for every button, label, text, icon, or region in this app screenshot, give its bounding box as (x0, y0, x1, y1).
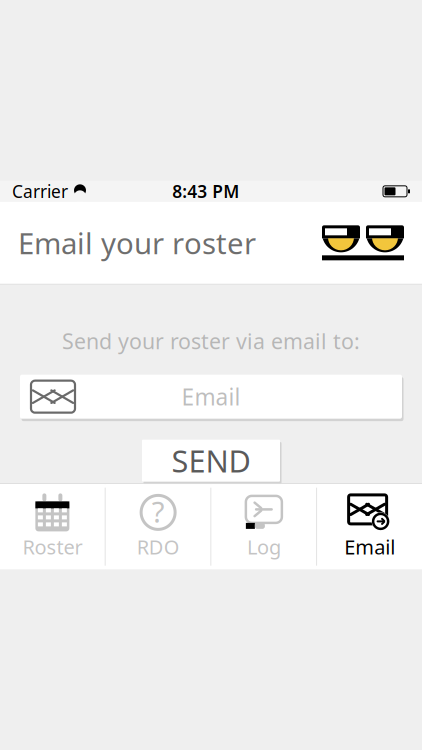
staticText: Send your roster via email to: (62, 327, 360, 355)
staticText: Roster (22, 533, 82, 560)
staticText: ? (152, 492, 165, 531)
button[interactable]: Log (211, 484, 316, 569)
staticText: Email your roster (18, 223, 256, 262)
button[interactable]: Roster (0, 484, 105, 569)
button[interactable]: Email (317, 484, 422, 569)
staticText: 8:43 PM (172, 180, 239, 203)
staticText: SEND (171, 440, 250, 481)
staticText: RDO (137, 533, 180, 560)
staticText: Carrier (12, 180, 68, 203)
staticText: Log (247, 533, 281, 560)
button[interactable]: SEND (140, 438, 281, 483)
staticText: Email (344, 533, 395, 560)
button[interactable]: ? (106, 484, 211, 569)
staticText: Email (181, 382, 240, 412)
